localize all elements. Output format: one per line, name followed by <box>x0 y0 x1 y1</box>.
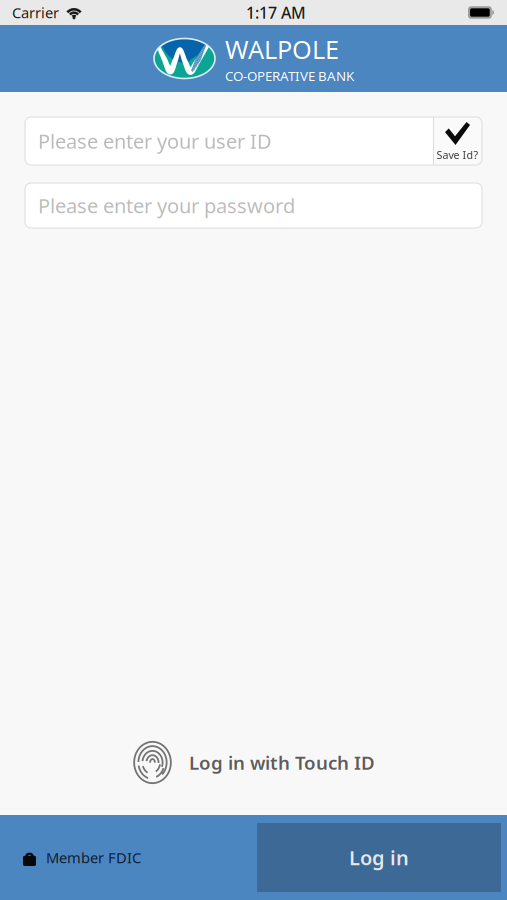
staticText: Please enter your password <box>38 192 295 219</box>
button[interactable]: Log in with Touch ID <box>132 737 375 788</box>
staticText: Member FDIC <box>46 848 141 867</box>
button[interactable]: Log in <box>257 823 501 892</box>
staticText: WALPOLE <box>225 32 339 66</box>
staticText: 1:17 AM <box>246 2 306 23</box>
staticText: Log in with Touch ID <box>189 750 375 775</box>
staticText: Save Id? <box>436 148 478 162</box>
button[interactable]: Save Id <box>433 117 482 165</box>
staticText: Carrier <box>12 3 59 22</box>
staticText: Please enter your user ID <box>38 128 272 154</box>
staticText: CO-OPERATIVE BANK <box>225 67 354 85</box>
staticText: Log in <box>349 844 409 871</box>
